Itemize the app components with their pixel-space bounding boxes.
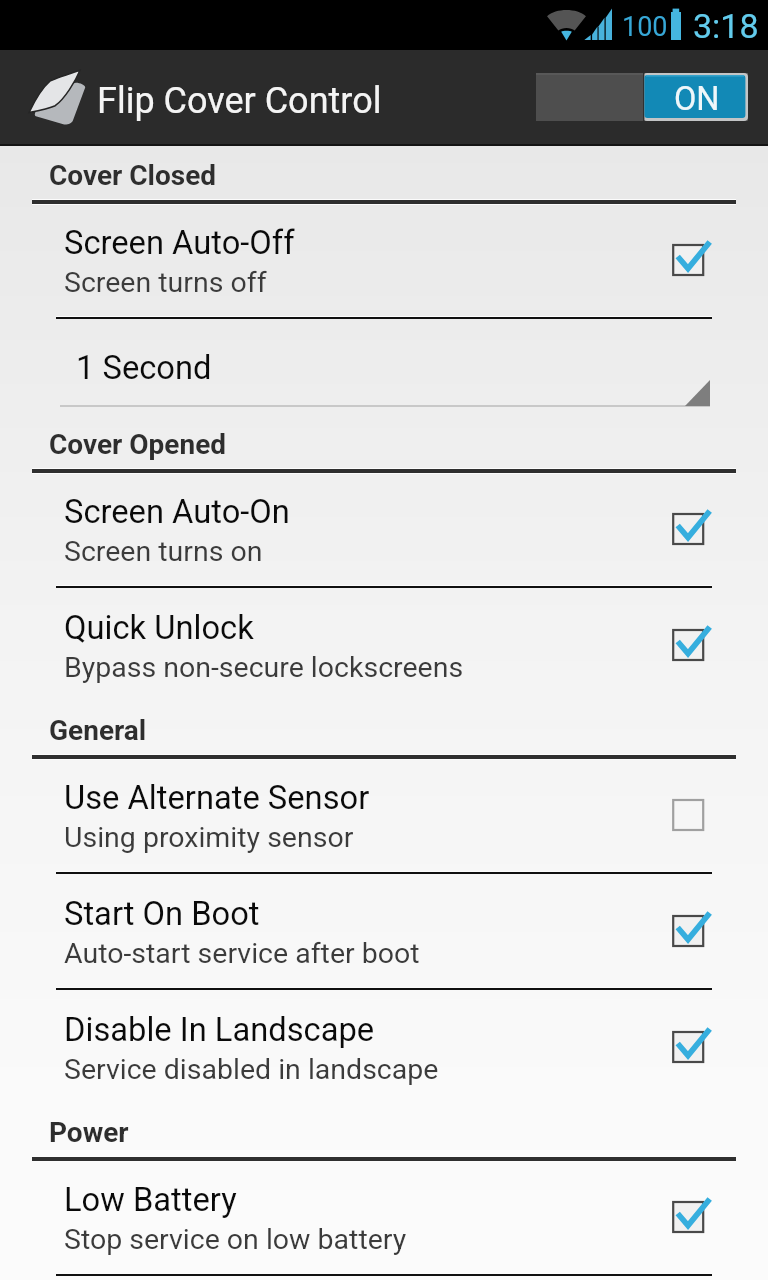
staticText: Screen turns off — [64, 266, 267, 299]
staticText: 1 Second — [76, 349, 212, 387]
staticText: Screen turns on — [64, 535, 263, 568]
staticText: ON — [674, 80, 720, 118]
staticText: Disable In Landscape — [64, 1011, 375, 1049]
staticText: Flip Cover Control — [97, 80, 382, 122]
button[interactable]: Use Alternate Sensor — [0, 758, 768, 874]
staticText: Using proximity sensor — [64, 821, 354, 854]
staticText: Service disabled in landscape — [64, 1053, 439, 1086]
button[interactable]: Toggle service — [536, 73, 748, 121]
button[interactable]: Screen Auto-Off — [0, 203, 768, 319]
staticText: 100 — [622, 11, 668, 43]
button[interactable]: Disable In Landscape — [0, 990, 768, 1103]
staticText: Cover Opened — [49, 428, 227, 461]
button[interactable]: 1 Second — [0, 319, 768, 415]
staticText: Cover Closed — [49, 159, 217, 192]
staticText: Auto-start service after boot — [64, 937, 420, 970]
staticText: Quick Unlock — [64, 609, 254, 647]
staticText: General — [49, 714, 147, 747]
button[interactable]: Quick Unlock — [0, 588, 768, 701]
staticText: Screen Auto-On — [64, 493, 290, 531]
staticText: Screen Auto-Off — [64, 224, 295, 262]
staticText: Stop service on low battery — [64, 1223, 407, 1256]
button[interactable]: Screen Auto-On — [0, 472, 768, 588]
staticText: Power — [49, 1116, 129, 1149]
staticText: Start On Boot — [64, 895, 260, 933]
button[interactable]: Start On Boot — [0, 874, 768, 990]
button[interactable]: Low Battery — [0, 1160, 768, 1276]
staticText: 3:18 — [693, 6, 759, 46]
staticText: Low Battery — [64, 1181, 237, 1219]
staticText: Bypass non-secure lockscreens — [64, 651, 464, 684]
staticText: Use Alternate Sensor — [64, 779, 370, 817]
